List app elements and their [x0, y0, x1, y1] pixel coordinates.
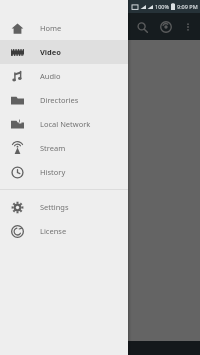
button[interactable]: Directories [0, 88, 128, 112]
staticText: data about your preferences [8, 192, 129, 204]
button[interactable]: Video [0, 40, 128, 64]
button[interactable]: License [0, 219, 128, 243]
button[interactable]: History [0, 160, 128, 184]
button[interactable]: Settings [0, 195, 128, 219]
button[interactable]: Refresh [154, 15, 178, 39]
button[interactable]: Local Network [0, 112, 128, 136]
staticText: 100% [155, 3, 170, 10]
staticText: Audio [40, 71, 61, 81]
staticText: License [40, 226, 67, 236]
staticText: Directories [40, 95, 79, 105]
button[interactable]: More options [178, 17, 198, 37]
staticText: Local Network [40, 119, 91, 129]
button[interactable]: Home [0, 16, 128, 40]
button[interactable]: Stream [0, 136, 128, 160]
staticText: History [40, 167, 66, 177]
button[interactable]: Search [130, 15, 154, 39]
staticText: Settings [40, 202, 69, 212]
button[interactable]: Audio [0, 64, 128, 88]
staticText: VLC needs to transfer some [8, 177, 125, 189]
staticText: Video [40, 47, 62, 57]
staticText: 9:09 PM [177, 3, 198, 10]
staticText: Stream [40, 143, 66, 153]
staticText: Home [40, 23, 62, 33]
